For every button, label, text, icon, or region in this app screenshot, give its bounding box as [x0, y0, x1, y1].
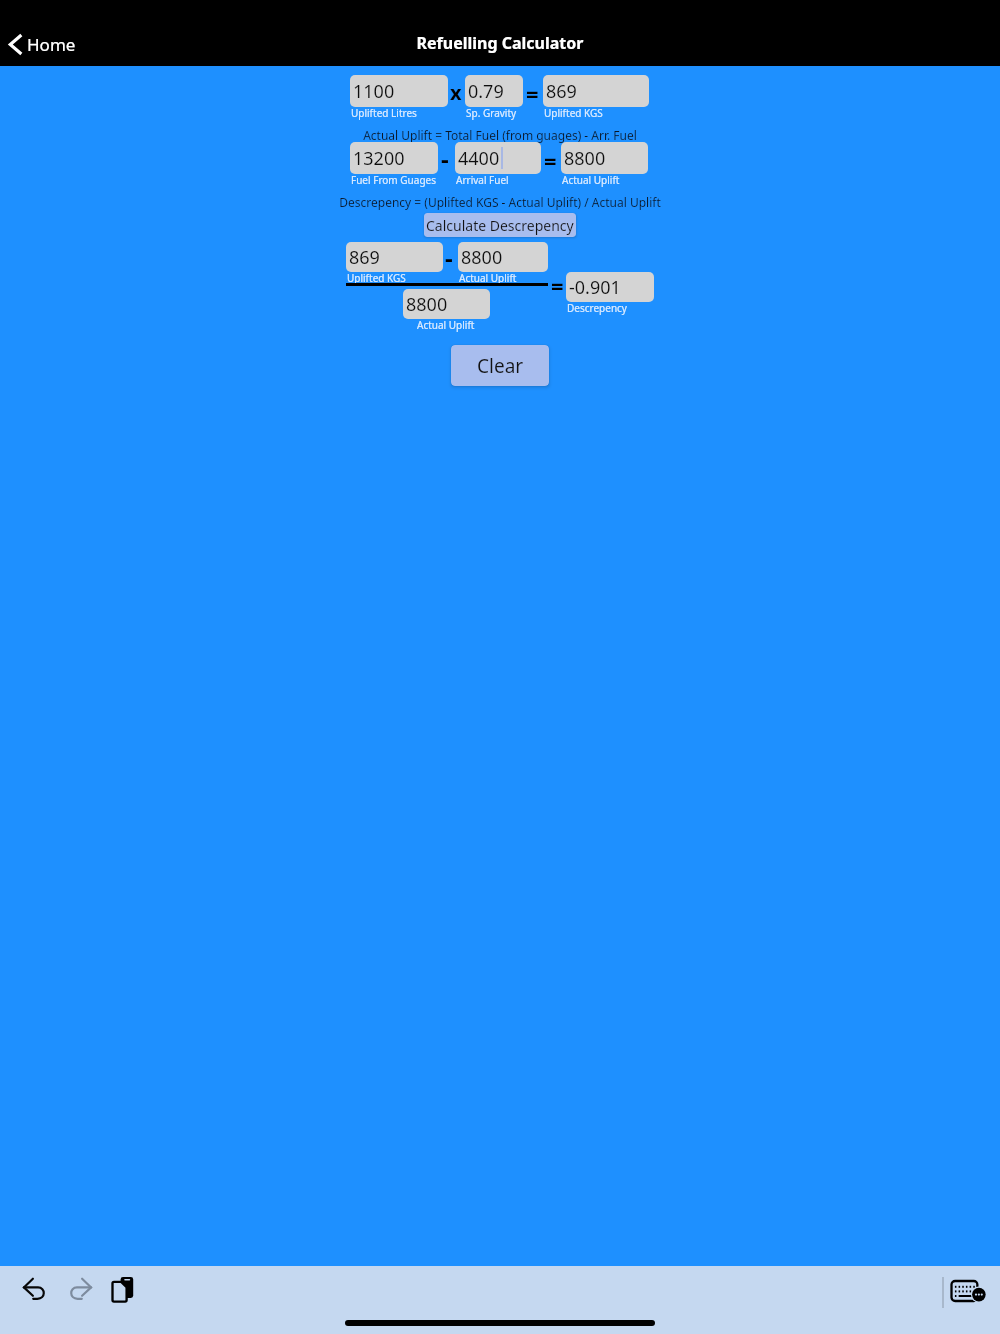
staticText: Arrival Fuel	[456, 173, 509, 187]
staticText: 13200	[353, 146, 405, 171]
button[interactable]: Keyboard options	[951, 1281, 985, 1301]
button[interactable]: 869	[346, 242, 443, 272]
staticText: Actual Uplift	[459, 271, 517, 285]
staticText: x	[450, 79, 462, 106]
staticText: -	[445, 241, 453, 274]
staticText: Home	[27, 33, 76, 56]
staticText: 8800	[461, 245, 503, 270]
staticText: Uplifted KGS	[347, 271, 406, 285]
staticText: -	[441, 142, 449, 175]
button[interactable]: 13200	[350, 142, 438, 174]
staticText: 869	[546, 79, 577, 104]
button[interactable]: Redo	[65, 1276, 95, 1306]
staticText: =	[544, 145, 557, 175]
button[interactable]: Undo	[20, 1276, 50, 1306]
staticText: Actual Uplift	[562, 173, 620, 187]
staticText: =	[551, 270, 564, 300]
button[interactable]: Clear	[451, 345, 549, 386]
button[interactable]: 0.79	[465, 75, 523, 107]
staticText: 8800	[564, 146, 606, 171]
staticText: Calculate Descrepency	[426, 216, 574, 235]
staticText: Descrepency	[567, 301, 627, 315]
button[interactable]: 8800	[561, 142, 648, 174]
staticText: Sp. Gravity	[466, 106, 517, 120]
button[interactable]: 1100	[350, 75, 448, 107]
button[interactable]: Home	[5, 30, 80, 59]
staticText: 0.79	[468, 79, 504, 104]
staticText: 4400	[458, 146, 500, 171]
staticText: 869	[349, 245, 380, 270]
staticText: -0.901	[569, 275, 621, 300]
button[interactable]: 8800	[458, 242, 548, 272]
button[interactable]: 869	[543, 75, 649, 107]
staticText: Clear	[477, 353, 524, 379]
staticText: =	[526, 78, 539, 108]
button[interactable]: Paste	[108, 1274, 138, 1304]
staticText: Refuelling Calculator	[0, 32, 1000, 54]
button[interactable]: -0.901	[566, 272, 654, 302]
button[interactable]: 4400	[455, 142, 541, 174]
staticText: 1100	[353, 79, 395, 104]
staticText: 8800	[406, 292, 448, 317]
staticText: Uplifted Litres	[351, 106, 417, 120]
staticText: Descrepency = (Uplifted KGS - Actual Upl…	[0, 194, 1000, 210]
staticText: Actual Uplift	[417, 318, 475, 332]
staticText: Fuel From Guages	[351, 173, 436, 187]
button[interactable]: 8800	[403, 289, 490, 319]
staticText: Actual Uplift = Total Fuel (from guages)…	[0, 127, 1000, 143]
button[interactable]: Calculate Descrepency	[424, 213, 576, 237]
staticText: Uplifted KGS	[544, 106, 603, 120]
